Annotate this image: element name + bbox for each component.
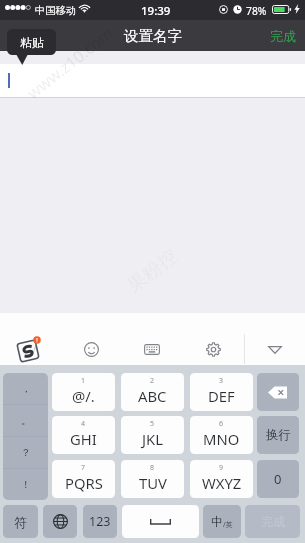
button[interactable]: 完成 <box>245 505 300 538</box>
staticText: TUV <box>139 473 167 493</box>
staticText: 0 <box>274 470 282 488</box>
staticText: 9 <box>219 463 224 473</box>
staticText: 。 <box>21 414 31 427</box>
staticText: /英 <box>223 520 233 530</box>
button[interactable]: 0 <box>257 460 299 498</box>
button[interactable]: 123 <box>83 505 117 538</box>
button[interactable]: 9 <box>190 460 253 498</box>
button[interactable]: Settings <box>190 333 236 366</box>
button[interactable]: 中 <box>203 505 241 538</box>
button[interactable]: 粘贴 <box>7 29 56 55</box>
staticText: 3 <box>219 376 224 386</box>
button[interactable]: 4 <box>52 416 115 454</box>
staticText: GHI <box>70 429 97 449</box>
staticText: 中国移动 <box>35 4 77 17</box>
button[interactable]: Switch input method <box>43 505 77 538</box>
staticText: @/. <box>72 386 95 406</box>
button[interactable]: Space <box>122 505 199 538</box>
staticText: ， <box>21 382 31 395</box>
button[interactable]: Hide keyboard <box>252 333 298 366</box>
staticText: 符 <box>14 514 27 530</box>
staticText: DEF <box>208 386 235 406</box>
button[interactable]: Delete <box>257 373 299 411</box>
staticText: PQRS <box>65 473 103 493</box>
staticText: 8 <box>150 463 155 473</box>
staticText: 7 <box>81 463 86 473</box>
button[interactable]: Emoji <box>68 333 114 366</box>
button[interactable]: 7 <box>52 460 115 498</box>
staticText: 19:39 <box>141 3 171 19</box>
button[interactable]: 5 <box>121 416 184 454</box>
button[interactable] <box>0 64 305 97</box>
staticText: 1 <box>81 376 86 386</box>
staticText: 4 <box>81 419 86 429</box>
staticText: 123 <box>89 513 111 530</box>
button[interactable]: Sogou input <box>5 333 51 366</box>
button[interactable]: 6 <box>190 416 253 454</box>
staticText: 粘贴 <box>20 35 44 50</box>
button[interactable]: 1 <box>52 373 115 411</box>
staticText: 6 <box>219 419 224 429</box>
staticText: ABC <box>138 386 167 406</box>
staticText: ！ <box>21 478 31 491</box>
staticText: www.z10.com <box>22 22 118 104</box>
button[interactable]: 8 <box>121 460 184 498</box>
staticText: MNO <box>203 429 240 449</box>
staticText: 2 <box>150 376 155 386</box>
button[interactable]: 换行 <box>257 416 299 454</box>
staticText: 中 <box>211 514 223 529</box>
staticText: 完成 <box>270 28 296 44</box>
staticText: ？ <box>21 446 31 459</box>
staticText: WXYZ <box>202 473 242 493</box>
staticText: 设置名字 <box>124 27 182 45</box>
button[interactable]: ， <box>3 373 48 404</box>
button[interactable]: 符 <box>3 505 38 538</box>
staticText: 完成 <box>261 514 285 529</box>
button[interactable]: 2 <box>121 373 184 411</box>
staticText: 5 <box>150 419 155 429</box>
button[interactable]: ？ <box>3 437 48 468</box>
button[interactable]: 完成 <box>261 23 305 49</box>
button[interactable]: Keyboard layout <box>129 333 175 366</box>
staticText: 78% <box>246 4 267 18</box>
button[interactable]: 3 <box>190 373 253 411</box>
staticText: 换行 <box>266 427 291 443</box>
button[interactable]: ！ <box>3 469 48 500</box>
staticText: JKL <box>142 429 163 449</box>
staticText: www.z10.com <box>200 441 296 523</box>
